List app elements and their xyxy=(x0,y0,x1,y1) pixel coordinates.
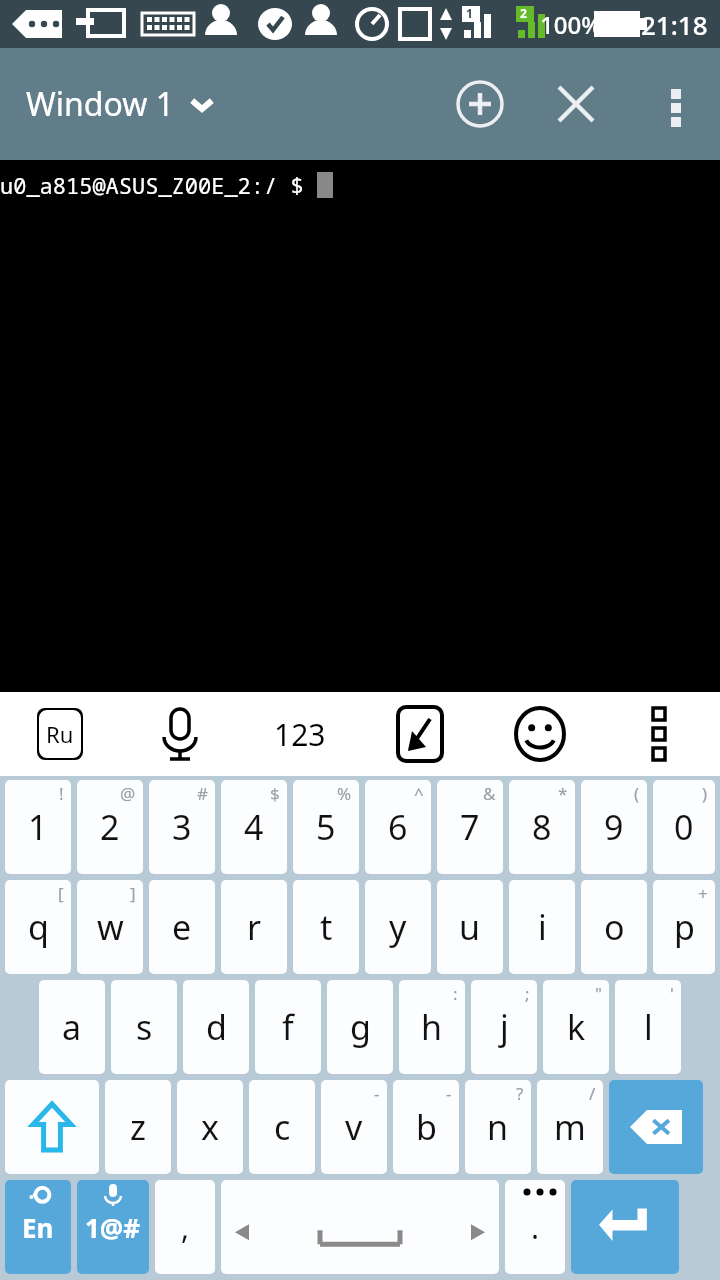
button[interactable]: l xyxy=(615,980,681,1074)
staticText: ) xyxy=(702,782,708,805)
staticText: n xyxy=(487,1104,509,1150)
staticText: [ xyxy=(58,882,64,905)
button[interactable]: x xyxy=(177,1080,243,1174)
button[interactable]: b xyxy=(393,1080,459,1174)
staticText: @ xyxy=(120,782,136,805)
button[interactable]: , xyxy=(155,1180,215,1274)
staticText: u0_a815@ASUS_Z00E_2:/ $ xyxy=(0,170,317,200)
staticText: p xyxy=(674,904,695,950)
staticText: x xyxy=(201,1104,219,1150)
staticText: b xyxy=(416,1104,437,1150)
staticText: / xyxy=(589,1082,596,1105)
button[interactable]: y xyxy=(365,880,431,974)
button[interactable]: 5 xyxy=(293,780,359,874)
button[interactable]: n xyxy=(465,1080,531,1174)
button[interactable]: More keyboard options xyxy=(600,692,720,776)
button[interactable]: e xyxy=(149,880,215,974)
staticText: k xyxy=(567,1004,586,1050)
button[interactable]: Voice input xyxy=(120,692,240,776)
staticText: u xyxy=(459,904,481,950)
staticText: - xyxy=(374,1082,380,1105)
button[interactable]: key xyxy=(609,1080,703,1174)
button[interactable]: i xyxy=(509,880,575,974)
button[interactable]: a xyxy=(39,980,105,1074)
button[interactable]: c xyxy=(249,1080,315,1174)
button[interactable]: k xyxy=(543,980,609,1074)
button[interactable]: 1 xyxy=(5,780,71,874)
button[interactable]: 2 xyxy=(77,780,143,874)
button[interactable]: 7 xyxy=(437,780,503,874)
staticText: g xyxy=(350,1004,371,1050)
staticText: j xyxy=(500,1004,509,1050)
button[interactable]: key xyxy=(571,1180,679,1274)
button[interactable]: h xyxy=(399,980,465,1074)
staticText: 9 xyxy=(604,804,624,850)
button[interactable]: m xyxy=(537,1080,603,1174)
staticText: ^ xyxy=(414,782,424,805)
staticText: En xyxy=(22,1210,54,1245)
button[interactable]: g xyxy=(327,980,393,1074)
staticText: # xyxy=(197,782,208,805)
button[interactable]: 0 xyxy=(653,780,715,874)
button[interactable]: w xyxy=(77,880,143,974)
staticText: 1@# xyxy=(85,1210,141,1245)
staticText: r xyxy=(247,904,262,950)
staticText: e xyxy=(172,904,192,950)
button[interactable]: New window xyxy=(452,76,508,132)
button[interactable]: p xyxy=(653,880,715,974)
staticText: ? xyxy=(516,1082,524,1105)
staticText: 5 xyxy=(316,804,336,850)
staticText: s xyxy=(136,1004,153,1050)
button[interactable]: Resize keyboard xyxy=(360,692,480,776)
button[interactable]: q xyxy=(5,880,71,974)
button[interactable]: Window 1 xyxy=(26,82,216,126)
button[interactable]: 4 xyxy=(221,780,287,874)
button[interactable]: En xyxy=(5,1180,71,1274)
staticText: v xyxy=(345,1104,363,1150)
staticText: a xyxy=(62,1004,82,1050)
staticText: Window 1 xyxy=(26,82,174,126)
staticText: $ xyxy=(270,782,280,805)
button[interactable]: v xyxy=(321,1080,387,1174)
button[interactable]: r xyxy=(221,880,287,974)
staticText: 100% xyxy=(540,8,602,41)
button[interactable]: o xyxy=(581,880,647,974)
button[interactable]: u xyxy=(437,880,503,974)
button[interactable]: f xyxy=(255,980,321,1074)
staticText: & xyxy=(483,782,496,805)
button[interactable]: 1@# xyxy=(77,1180,149,1274)
staticText: ( xyxy=(634,782,640,805)
button[interactable]: More options xyxy=(650,78,702,130)
button[interactable]: 123 xyxy=(240,692,360,776)
button[interactable]: key xyxy=(221,1180,499,1274)
staticText: t xyxy=(320,904,333,950)
staticText: 1 xyxy=(466,5,473,21)
button[interactable]: Language Ru xyxy=(0,692,120,776)
staticText: h xyxy=(421,1004,443,1050)
button[interactable]: d xyxy=(183,980,249,1074)
button[interactable]: 9 xyxy=(581,780,647,874)
staticText: m xyxy=(554,1104,586,1150)
button[interactable]: Close window xyxy=(548,76,604,132)
button[interactable]: z xyxy=(105,1080,171,1174)
staticText: 3 xyxy=(172,804,192,850)
staticText: 6 xyxy=(388,804,408,850)
staticText: 123 xyxy=(274,714,326,755)
button[interactable]: t xyxy=(293,880,359,974)
staticText: 1 xyxy=(28,804,48,850)
button[interactable]: Emoji xyxy=(480,692,600,776)
button[interactable]: key xyxy=(5,1080,99,1174)
staticText: y xyxy=(389,904,407,950)
button[interactable]: . xyxy=(505,1180,565,1274)
button[interactable]: 8 xyxy=(509,780,575,874)
staticText: : xyxy=(453,982,458,1005)
staticText: f xyxy=(282,1004,294,1050)
staticText: " xyxy=(595,982,602,1005)
button[interactable]: s xyxy=(111,980,177,1074)
staticText: w xyxy=(97,904,124,950)
button[interactable]: 6 xyxy=(365,780,431,874)
button[interactable]: 3 xyxy=(149,780,215,874)
button[interactable]: j xyxy=(471,980,537,1074)
staticText: ] xyxy=(130,882,136,905)
staticText: % xyxy=(337,782,352,805)
